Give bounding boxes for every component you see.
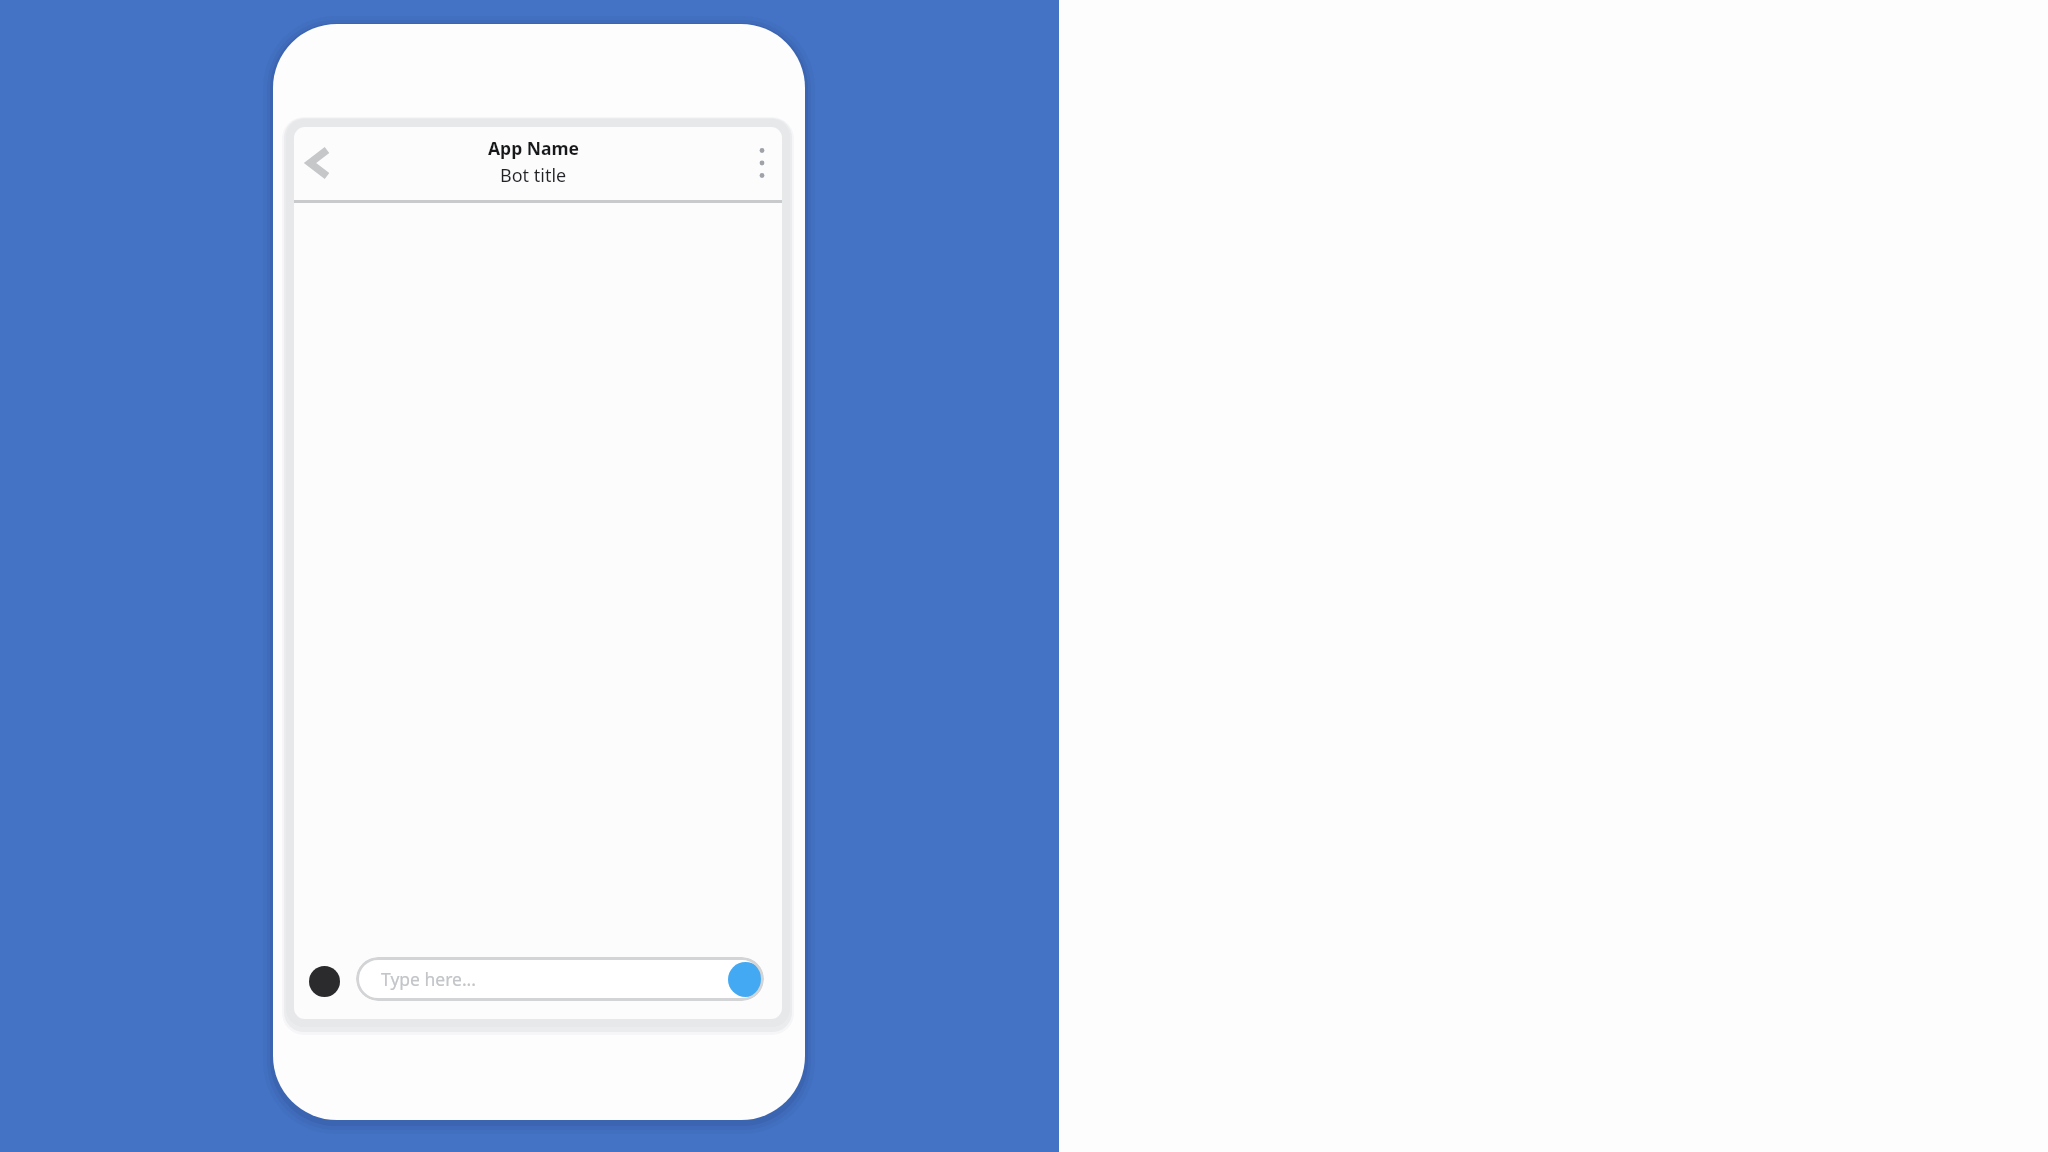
button[interactable] [742, 137, 782, 191]
button[interactable]: Type here... [356, 957, 764, 1001]
staticText: Bot title [500, 163, 567, 188]
staticText: App Name [488, 136, 579, 160]
staticText: Type here... [381, 967, 476, 991]
button[interactable] [294, 145, 338, 185]
button[interactable] [728, 962, 763, 997]
button[interactable] [309, 966, 340, 997]
